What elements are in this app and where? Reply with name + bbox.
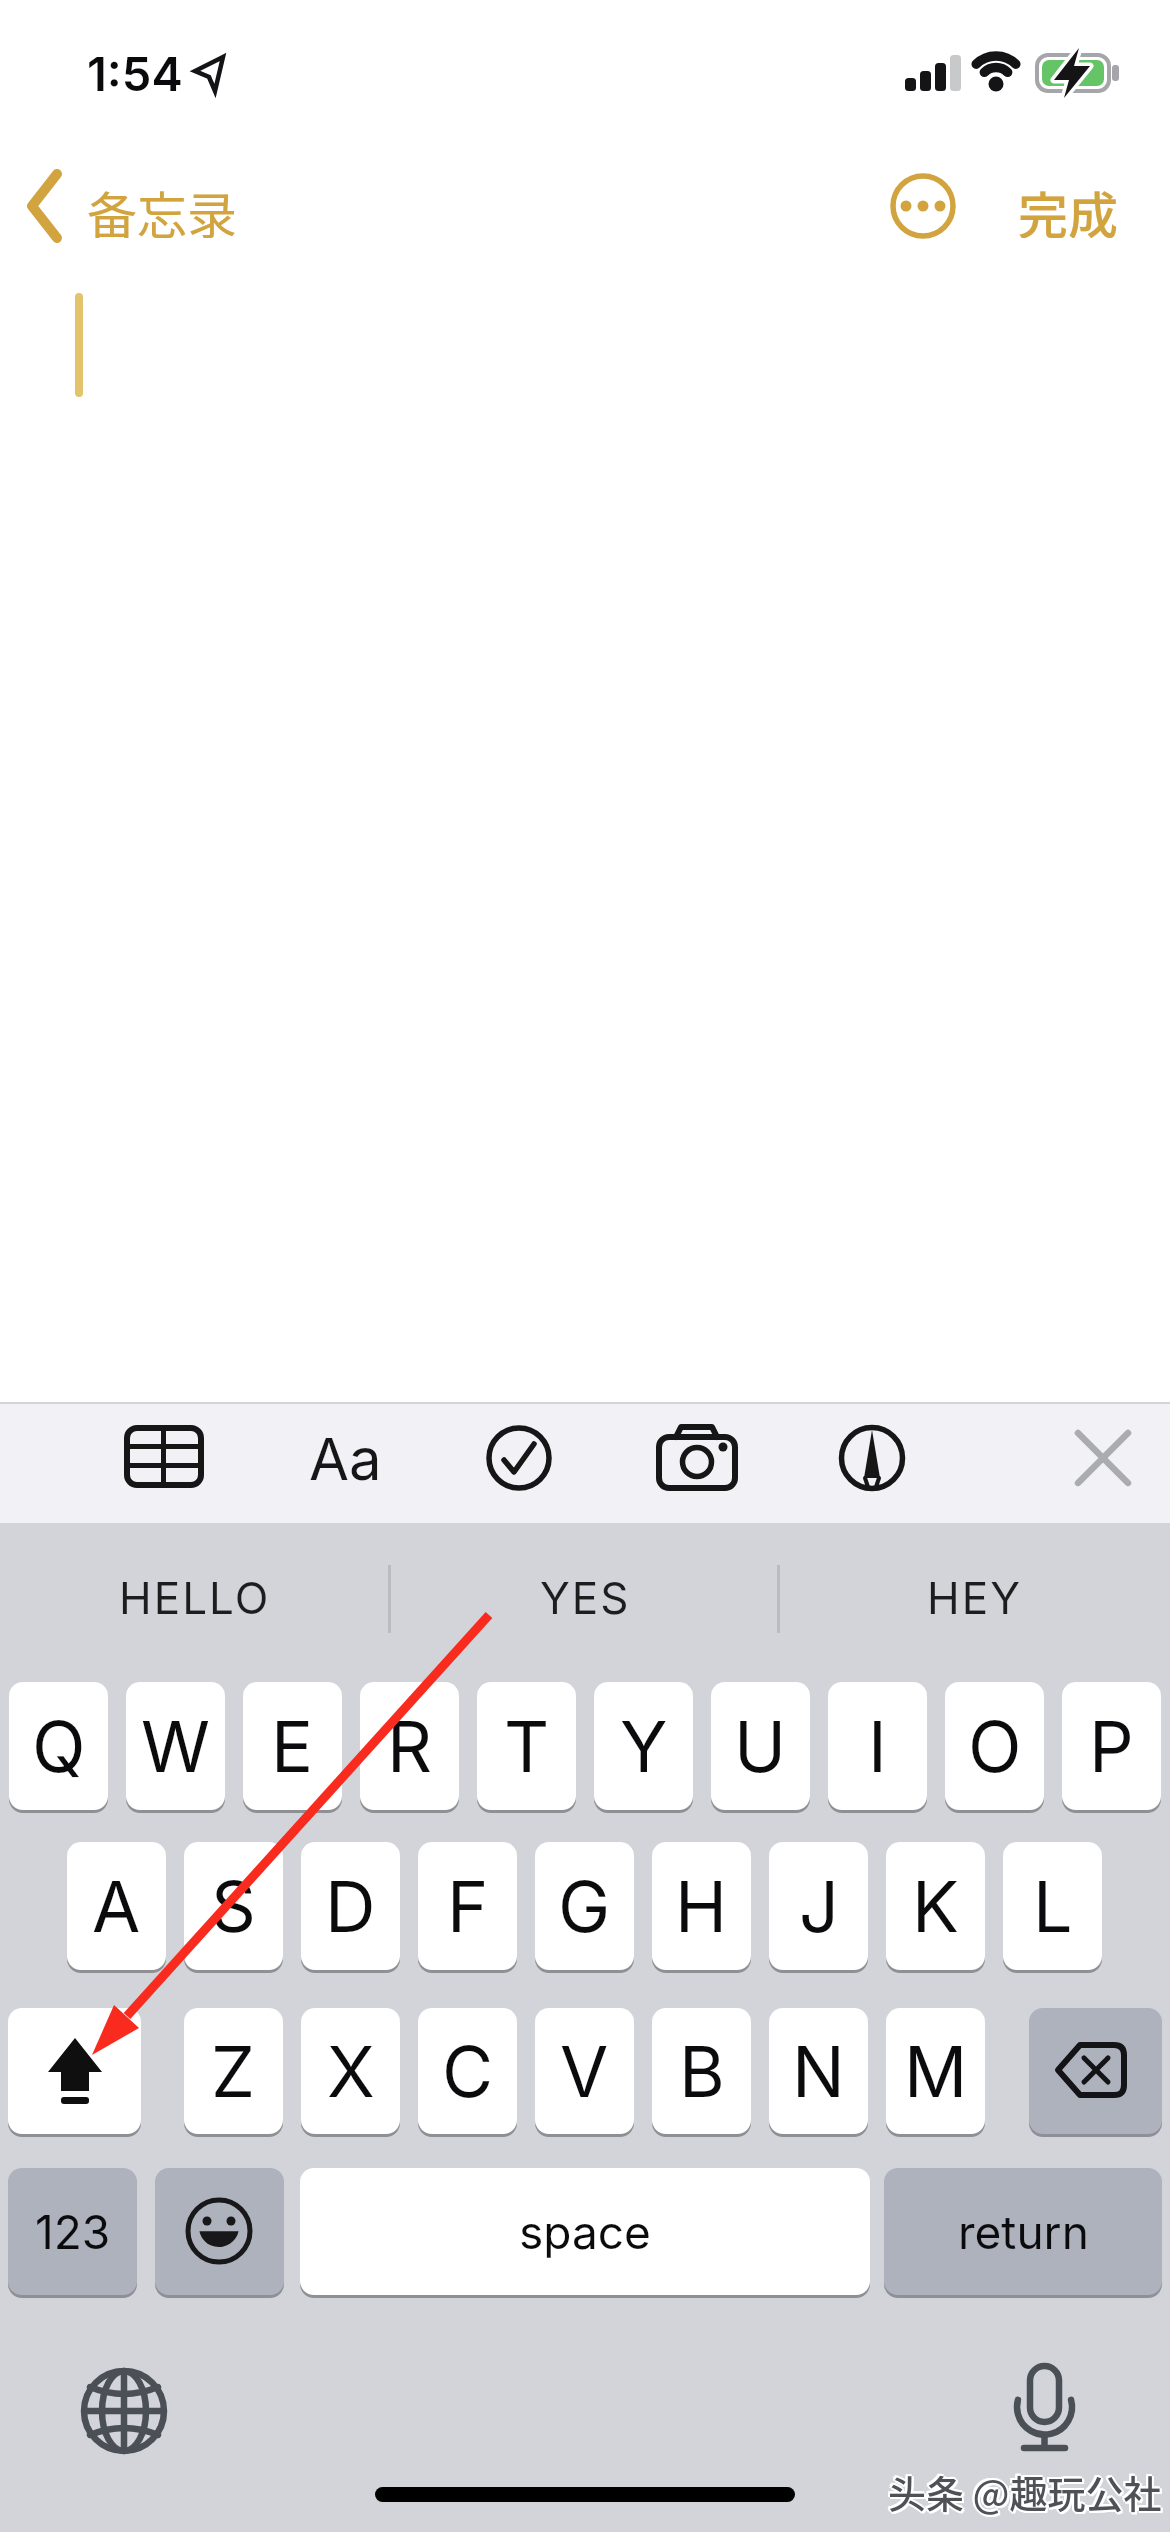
button[interactable]: W	[126, 1682, 225, 1810]
staticText: W	[141, 1704, 210, 1789]
staticText: Q	[32, 1704, 86, 1789]
button[interactable]: S	[184, 1842, 283, 1970]
button[interactable]: L	[1003, 1842, 1102, 1970]
button[interactable]: B	[652, 2008, 751, 2134]
staticText: 头条 @趣玩公社	[886, 2462, 1160, 2514]
staticText: J	[799, 1864, 839, 1949]
button[interactable]: U	[711, 1682, 810, 1810]
button[interactable]: J	[769, 1842, 868, 1970]
button[interactable]: space	[300, 2168, 870, 2295]
staticText: G	[558, 1864, 611, 1949]
staticText: A	[92, 1864, 141, 1949]
staticText: M	[904, 2029, 968, 2114]
staticText: return	[958, 2204, 1089, 2260]
button[interactable]	[8, 2008, 141, 2134]
staticText: B	[679, 2029, 725, 2114]
button[interactable]: D	[301, 1842, 400, 1970]
staticText: H	[675, 1864, 728, 1949]
button[interactable]: C	[418, 2008, 517, 2134]
staticText: R	[387, 1704, 433, 1789]
staticText: 头条 @趣玩公社	[888, 2466, 1162, 2518]
button[interactable]	[1029, 2008, 1162, 2134]
button[interactable]: H	[652, 1842, 751, 1970]
staticText: F	[447, 1864, 489, 1949]
staticText: V	[560, 2029, 609, 2114]
staticText: I	[868, 1704, 887, 1789]
staticText: 头条 @趣玩公社	[888, 2464, 1162, 2516]
staticText: Aa	[309, 1424, 382, 1492]
button[interactable]: I	[828, 1682, 927, 1810]
button[interactable]: K	[886, 1842, 985, 1970]
staticText: K	[912, 1864, 960, 1949]
staticText: space	[519, 2204, 651, 2260]
button[interactable]: 完成	[1008, 176, 1128, 238]
button[interactable]: HEY	[900, 1568, 1050, 1626]
button[interactable]: M	[886, 2008, 985, 2134]
staticText: 头条 @趣玩公社	[886, 2464, 1160, 2516]
staticText: T	[504, 1704, 550, 1789]
button[interactable]: P	[1062, 1682, 1161, 1810]
button[interactable]: return	[884, 2168, 1162, 2295]
staticText: HELLO	[119, 1571, 271, 1624]
button[interactable]: Z	[184, 2008, 283, 2134]
button[interactable]: O	[945, 1682, 1044, 1810]
staticText: U	[734, 1704, 787, 1789]
staticText: C	[442, 2029, 494, 2114]
button[interactable]: 123	[8, 2168, 137, 2295]
staticText: 123	[35, 2204, 111, 2260]
button[interactable]: X	[301, 2008, 400, 2134]
staticText: D	[325, 1864, 376, 1949]
button[interactable]: N	[769, 2008, 868, 2134]
button[interactable]: Aa	[295, 1424, 395, 1492]
staticText: HEY	[927, 1571, 1023, 1624]
button[interactable]: V	[535, 2008, 634, 2134]
button[interactable]: T	[477, 1682, 576, 1810]
staticText: Z	[211, 2029, 256, 2114]
button[interactable]: E	[243, 1682, 342, 1810]
staticText: 头条 @趣玩公社	[890, 2464, 1164, 2516]
button[interactable]: Q	[9, 1682, 108, 1810]
button[interactable]: R	[360, 1682, 459, 1810]
staticText: YES	[540, 1571, 631, 1624]
staticText: S	[211, 1864, 256, 1949]
staticText: 头条 @趣玩公社	[890, 2466, 1164, 2518]
button[interactable]: HELLO	[110, 1568, 280, 1626]
staticText: L	[1033, 1864, 1073, 1949]
staticText: P	[1089, 1704, 1134, 1789]
button[interactable]	[155, 2168, 284, 2295]
staticText: 1:54	[87, 45, 183, 99]
staticText: 完成	[1018, 176, 1118, 238]
staticText: 备忘录	[87, 176, 237, 238]
button[interactable]: YES	[510, 1568, 660, 1626]
button[interactable]: G	[535, 1842, 634, 1970]
staticText: Y	[620, 1704, 668, 1789]
staticText: E	[271, 1704, 314, 1789]
button[interactable]: F	[418, 1842, 517, 1970]
button[interactable]: 备忘录	[82, 176, 242, 238]
staticText: N	[792, 2029, 845, 2114]
button[interactable]: Y	[594, 1682, 693, 1810]
staticText: X	[327, 2029, 375, 2114]
button[interactable]: A	[67, 1842, 166, 1970]
staticText: 头条 @趣玩公社	[888, 2462, 1162, 2514]
staticText: O	[968, 1704, 1022, 1789]
